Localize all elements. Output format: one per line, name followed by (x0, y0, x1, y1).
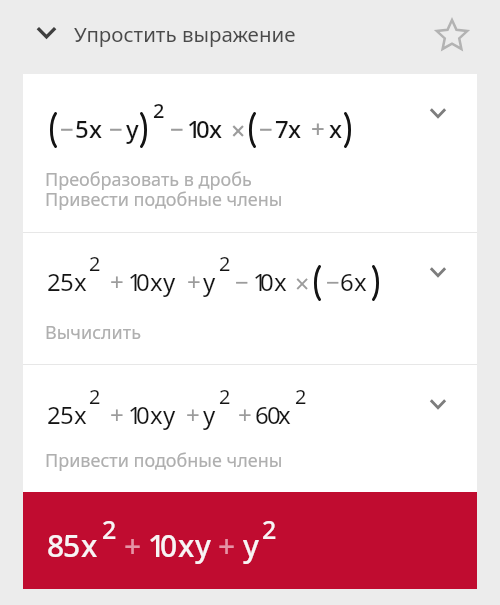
staticText: x (274, 265, 287, 298)
staticText: 0 (136, 398, 150, 431)
staticText: 0 (260, 265, 274, 298)
staticText: Преобразовать в дробь (45, 167, 252, 192)
staticText: 1 (253, 265, 267, 298)
staticText: 2 (102, 512, 117, 546)
staticText: + (238, 398, 252, 431)
staticText: 2 (295, 383, 307, 410)
staticText: 0 (267, 398, 281, 431)
staticText: Привести подобные члены (45, 448, 283, 473)
staticText: 5 (63, 525, 81, 566)
staticText: x (150, 265, 163, 298)
staticText: 2 (262, 512, 277, 546)
staticText: 6 (340, 265, 354, 298)
staticText: 1 (187, 112, 201, 145)
staticText: − (235, 265, 249, 298)
staticText: Вычислить (45, 320, 141, 345)
staticText: − (259, 112, 273, 145)
button[interactable]: 2 (23, 365, 477, 492)
staticText: + (218, 525, 236, 566)
staticText: 5 (60, 398, 74, 431)
staticText: + (124, 525, 142, 566)
staticText: 0 (136, 265, 150, 298)
staticText: x (178, 525, 195, 566)
staticText: 2 (47, 398, 61, 431)
staticText: y (203, 398, 216, 431)
staticText: x (288, 112, 302, 145)
staticText: x (74, 265, 87, 298)
staticText: 2 (47, 265, 61, 298)
staticText: x (329, 112, 343, 145)
staticText: 2 (89, 250, 101, 277)
staticText: y (126, 112, 139, 145)
staticText: 2 (219, 250, 231, 277)
staticText: 2 (89, 383, 101, 410)
staticText: y (243, 525, 259, 566)
staticText: × (231, 113, 246, 147)
staticText: + (186, 398, 200, 431)
staticText: × (295, 266, 310, 300)
button[interactable]: Expand step (418, 93, 458, 133)
staticText: + (311, 112, 325, 145)
staticText: 5 (60, 265, 74, 298)
staticText: 8 (47, 525, 65, 566)
button[interactable]: Collapse (24, 10, 69, 55)
staticText: x (354, 265, 367, 298)
staticText: − (170, 112, 184, 145)
button[interactable]: 2 (23, 233, 477, 364)
staticText: x (81, 525, 98, 566)
button[interactable]: Expand step (418, 384, 458, 424)
staticText: 6 (255, 398, 269, 431)
staticText: x (74, 398, 87, 431)
staticText: x (278, 398, 291, 431)
button[interactable]: Expand step (418, 252, 458, 292)
staticText: y (195, 525, 211, 566)
staticText: y (163, 398, 176, 431)
staticText: Упростить выражение (74, 20, 296, 48)
staticText: Привести подобные члены (45, 187, 283, 212)
staticText: y (163, 265, 176, 298)
staticText: − (60, 112, 74, 145)
button[interactable]: − (23, 74, 477, 232)
staticText: 1 (148, 525, 166, 566)
staticText: 1 (128, 265, 142, 298)
staticText: 0 (160, 525, 178, 566)
staticText: 5 (75, 112, 89, 145)
staticText: 2 (153, 97, 165, 124)
staticText: − (326, 265, 340, 298)
staticText: 0 (196, 112, 210, 145)
staticText: x (89, 112, 103, 145)
staticText: 7 (275, 112, 289, 145)
staticText: − (109, 112, 123, 145)
staticText: y (203, 265, 216, 298)
staticText: 1 (128, 398, 142, 431)
staticText: x (150, 398, 163, 431)
staticText: + (110, 265, 124, 298)
staticText: x (209, 112, 223, 145)
button[interactable]: Favorite (422, 6, 482, 66)
button[interactable]: 8 (23, 492, 477, 589)
staticText: + (187, 265, 201, 298)
staticText: 2 (219, 383, 231, 410)
staticText: + (110, 398, 124, 431)
